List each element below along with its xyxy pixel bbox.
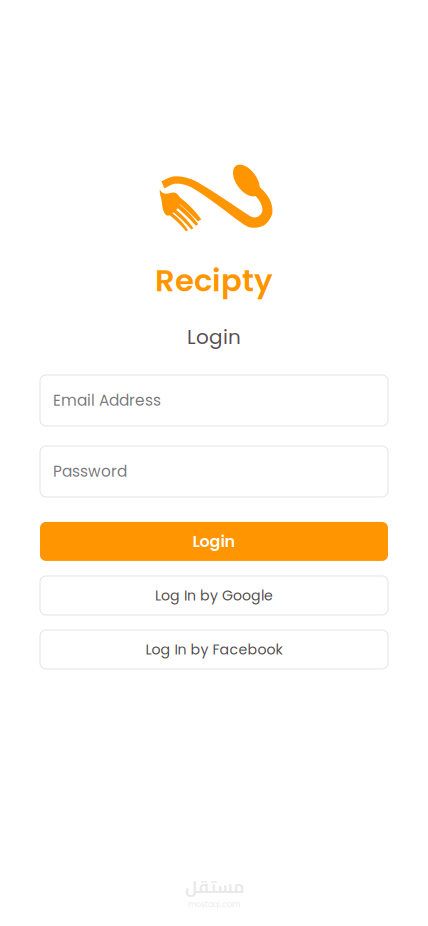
staticText: Login xyxy=(192,530,235,553)
staticText: mostaqi.com xyxy=(188,899,240,910)
button[interactable]: Login xyxy=(40,522,388,561)
staticText: Password xyxy=(53,461,127,482)
staticText: مستقل xyxy=(184,870,243,903)
staticText: Login xyxy=(187,323,241,351)
staticText: Email Address xyxy=(53,390,161,411)
staticText: Recipty xyxy=(155,259,273,302)
staticText: Log In by Facebook xyxy=(145,639,282,659)
staticText: Log In by Google xyxy=(155,585,273,605)
button[interactable]: Log In by Google xyxy=(40,576,388,615)
button[interactable]: Log In by Facebook xyxy=(40,630,388,669)
